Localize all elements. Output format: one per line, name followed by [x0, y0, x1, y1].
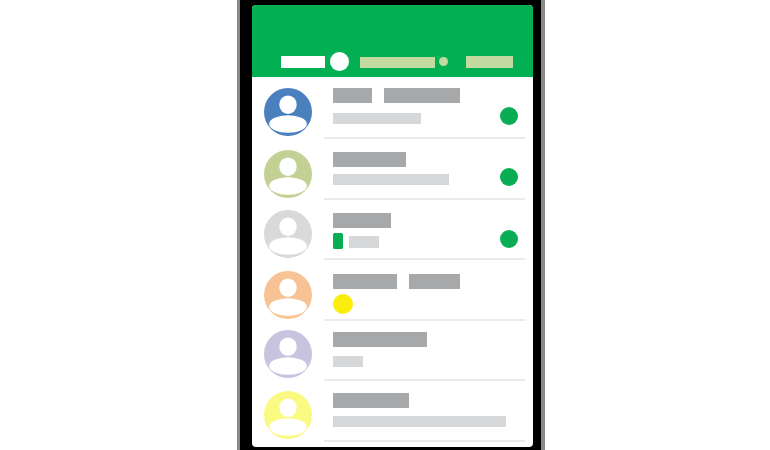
button[interactable]: More options [439, 57, 448, 66]
button[interactable]: Conversation 6 [252, 380, 533, 441]
button[interactable]: Conversation 2 [252, 138, 533, 199]
button[interactable]: Profile [330, 52, 349, 71]
button[interactable]: Conversation 4 [252, 259, 533, 320]
button[interactable]: Conversation 1 [252, 77, 533, 138]
button[interactable]: Conversation 5 [252, 319, 533, 380]
button[interactable]: Conversation 3 [252, 198, 533, 259]
